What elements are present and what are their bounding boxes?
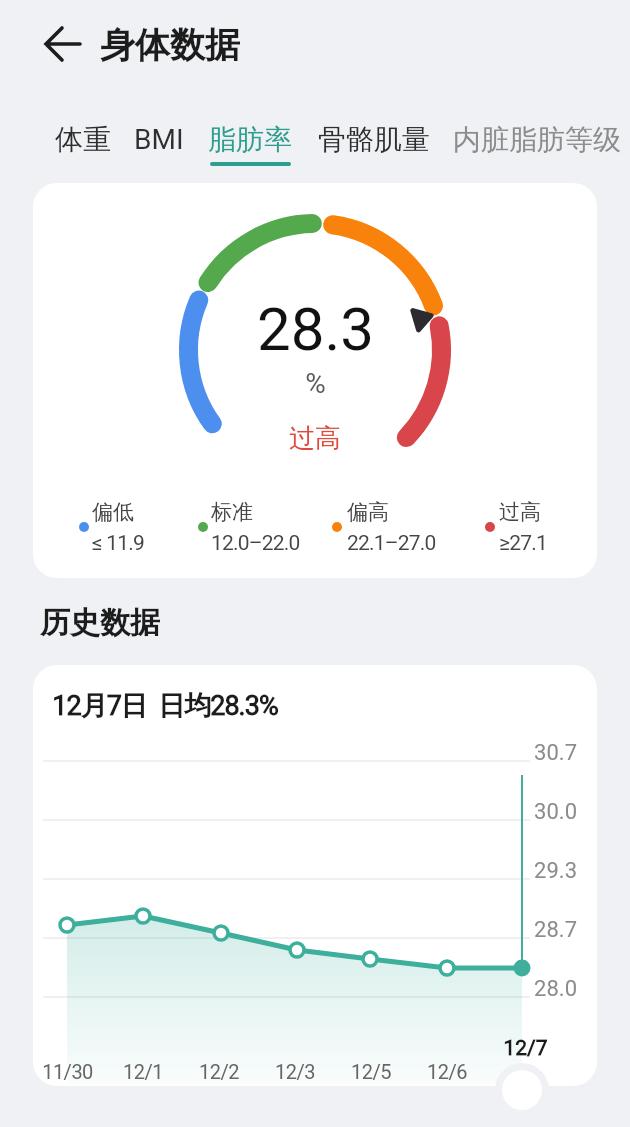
staticText: ≥27.1	[499, 531, 547, 556]
staticText: 脂肪率	[208, 122, 292, 157]
staticText: 12.0–22.0	[211, 531, 300, 556]
button[interactable]: BMI	[134, 123, 184, 156]
staticText: 30.0	[534, 799, 577, 823]
staticText: 骨骼肌量	[318, 122, 430, 157]
staticText: 12/7	[503, 1036, 548, 1061]
staticText: %	[305, 367, 326, 400]
staticText: 12月7日 日均28.3%	[52, 689, 278, 723]
staticText: 12/2	[199, 1060, 239, 1083]
button[interactable]: 骨骼肌量	[318, 122, 430, 157]
staticText: 偏高	[347, 499, 389, 525]
button[interactable]	[30, 14, 94, 74]
staticText: 11/30	[42, 1060, 93, 1083]
staticText: 偏低	[92, 499, 134, 525]
staticText: 内脏脂肪等级	[453, 122, 621, 157]
staticText: 28.0	[534, 976, 577, 1000]
staticText: 28.3	[257, 294, 374, 364]
staticText: 标准	[211, 499, 253, 525]
staticText: 过高	[499, 499, 541, 525]
staticText: 身体数据	[100, 23, 240, 63]
staticText: 12/3	[275, 1060, 315, 1083]
staticText: 体重	[55, 122, 111, 157]
staticText: 历史数据	[40, 604, 160, 640]
button[interactable]: 内脏脂肪等级	[453, 122, 621, 157]
staticText: 29.3	[534, 858, 577, 882]
staticText: 12/6	[427, 1060, 467, 1083]
staticText: BMI	[134, 123, 184, 156]
staticText: 22.1–27.0	[347, 531, 436, 556]
staticText: 30.7	[534, 740, 577, 764]
staticText: ≤ 11.9	[92, 531, 145, 556]
staticText: 过高	[289, 422, 341, 455]
staticText: 12/5	[351, 1060, 391, 1083]
staticText: 28.7	[534, 917, 577, 941]
staticText: 12/1	[123, 1060, 163, 1083]
button[interactable]: 体重	[55, 122, 111, 157]
button[interactable]	[502, 1070, 542, 1110]
button[interactable]: 脂肪率	[208, 122, 292, 157]
